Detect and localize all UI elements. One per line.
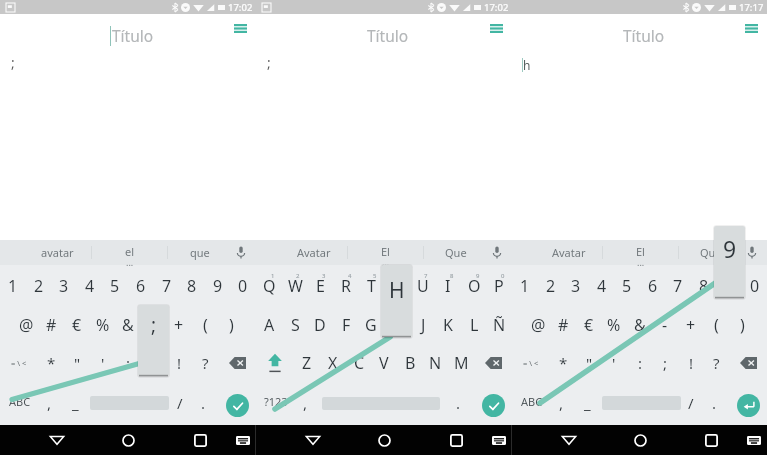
button[interactable]: 4	[77, 271, 103, 301]
button[interactable]: 8	[691, 271, 717, 301]
button[interactable]: ;	[652, 348, 678, 378]
button[interactable]: 3	[563, 271, 589, 301]
button[interactable]: (	[703, 310, 729, 340]
button[interactable]: S	[282, 310, 308, 340]
button[interactable]: ,	[550, 388, 573, 418]
button[interactable]: -	[141, 310, 167, 340]
button[interactable]: = \ <	[512, 348, 550, 378]
button[interactable]: #	[550, 310, 576, 340]
button[interactable]: Home	[622, 425, 658, 455]
button[interactable]: El	[603, 240, 678, 265]
button[interactable]: Y	[384, 271, 410, 301]
button[interactable]: 5	[102, 271, 128, 301]
button[interactable]: X	[320, 348, 346, 378]
button[interactable]: que	[168, 240, 225, 265]
button[interactable]: 8	[179, 271, 205, 301]
button[interactable]: Avatar	[256, 240, 347, 265]
button[interactable]: H	[384, 310, 410, 340]
button[interactable]: Home	[110, 425, 146, 455]
button[interactable]: Que	[424, 240, 481, 265]
button[interactable]: "	[64, 348, 90, 378]
button[interactable]: #	[38, 310, 64, 340]
button[interactable]: Space	[87, 388, 171, 418]
button[interactable]: W	[282, 271, 308, 301]
button[interactable]: Voice input	[481, 240, 512, 265]
button[interactable]: *	[550, 348, 576, 378]
button[interactable]: L	[461, 310, 487, 340]
button[interactable]: R	[333, 271, 359, 301]
button[interactable]: Home	[366, 425, 402, 455]
button[interactable]: Space	[599, 388, 683, 418]
button[interactable]: '	[601, 348, 627, 378]
button[interactable]: &	[627, 310, 653, 340]
button[interactable]: Q	[256, 271, 282, 301]
button[interactable]: Menu	[482, 14, 510, 42]
button[interactable]: "	[576, 348, 602, 378]
button[interactable]: Done	[482, 394, 505, 417]
button[interactable]: 5	[614, 271, 640, 301]
button[interactable]: 6	[128, 271, 154, 301]
button[interactable]: _	[64, 388, 87, 418]
button[interactable]: Backspace	[729, 348, 767, 378]
button[interactable]: 3	[51, 271, 77, 301]
button[interactable]: Shift	[256, 348, 294, 378]
button[interactable]: .	[703, 388, 726, 418]
button[interactable]: 0	[230, 271, 256, 301]
button[interactable]: F	[333, 310, 359, 340]
button[interactable]: Ñ	[486, 310, 512, 340]
button[interactable]: ?	[192, 348, 218, 378]
button[interactable]: €	[64, 310, 90, 340]
button[interactable]: ?	[703, 348, 729, 378]
button[interactable]: 1	[0, 271, 26, 301]
button[interactable]: Avatar	[512, 240, 602, 265]
button[interactable]: Backspace	[218, 348, 256, 378]
button[interactable]: !	[166, 348, 192, 378]
button[interactable]: 2	[26, 271, 52, 301]
button[interactable]: 2	[538, 271, 564, 301]
button[interactable]: M	[448, 348, 474, 378]
button[interactable]: ,	[38, 388, 61, 418]
button[interactable]: +	[166, 310, 192, 340]
button[interactable]: +	[678, 310, 704, 340]
button[interactable]: 7	[154, 271, 180, 301]
button[interactable]: Keyboard	[225, 425, 261, 455]
button[interactable]: &	[115, 310, 141, 340]
button[interactable]: V	[371, 348, 397, 378]
button[interactable]: A	[256, 310, 282, 340]
button[interactable]: 0	[742, 271, 767, 301]
button[interactable]: Menu	[226, 14, 254, 42]
button[interactable]: :	[115, 348, 141, 378]
button[interactable]: ?123	[260, 386, 292, 416]
button[interactable]: O	[461, 271, 487, 301]
button[interactable]: Recents	[693, 425, 729, 455]
button[interactable]: )	[729, 310, 755, 340]
button[interactable]: 9	[205, 271, 231, 301]
button[interactable]: El	[348, 240, 423, 265]
button[interactable]: Back	[39, 425, 75, 455]
button[interactable]: Done	[226, 394, 249, 417]
button[interactable]: ABC	[4, 386, 36, 416]
button[interactable]: Back	[295, 425, 331, 455]
button[interactable]: 1	[512, 271, 538, 301]
button[interactable]: D	[307, 310, 333, 340]
button[interactable]: Voice input	[225, 240, 256, 265]
button[interactable]: C	[346, 348, 372, 378]
button[interactable]: /	[679, 388, 702, 418]
button[interactable]: %	[601, 310, 627, 340]
button[interactable]: Enter	[737, 394, 760, 417]
button[interactable]: = \ <	[0, 348, 38, 378]
button[interactable]: Keyboard	[481, 425, 517, 455]
button[interactable]: G	[358, 310, 384, 340]
button[interactable]: avatar	[0, 240, 91, 265]
button[interactable]: ,	[292, 388, 318, 418]
button[interactable]: €	[576, 310, 602, 340]
button[interactable]: -	[652, 310, 678, 340]
button[interactable]: :	[627, 348, 653, 378]
button[interactable]: 6	[640, 271, 666, 301]
button[interactable]: Backspace	[474, 348, 512, 378]
button[interactable]: B	[397, 348, 423, 378]
button[interactable]: Recents	[438, 425, 474, 455]
button[interactable]: ABC	[516, 386, 548, 416]
button[interactable]: N	[422, 348, 448, 378]
button[interactable]: ;	[141, 348, 167, 378]
